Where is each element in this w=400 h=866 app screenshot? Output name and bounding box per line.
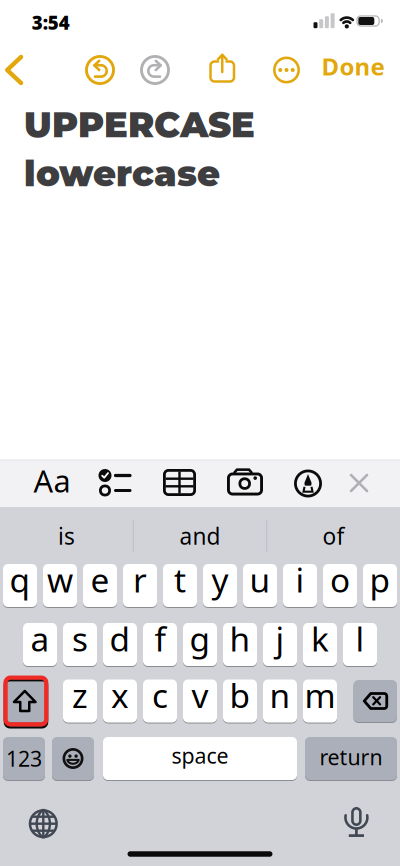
- staticText: e: [90, 557, 109, 602]
- button[interactable]: q: [3, 564, 37, 607]
- button[interactable]: n: [263, 679, 297, 722]
- staticText: r: [133, 557, 147, 602]
- button[interactable]: Share: [209, 52, 235, 82]
- staticText: l: [355, 616, 364, 661]
- button[interactable]: o: [323, 564, 357, 607]
- button[interactable]: i: [283, 564, 317, 607]
- button[interactable]: Emoji: [52, 737, 94, 780]
- button[interactable]: Format: [33, 463, 70, 503]
- button[interactable]: r: [123, 564, 157, 607]
- staticText: 3:54: [32, 10, 70, 35]
- staticText: x: [111, 673, 129, 717]
- button[interactable]: b: [223, 679, 257, 722]
- button[interactable]: Undo: [85, 55, 115, 85]
- button[interactable]: Dismiss keyboard: [349, 473, 368, 492]
- button[interactable]: Redo: [140, 55, 170, 85]
- button[interactable]: Next keyboard: [28, 809, 58, 839]
- button[interactable]: Checklist: [96, 467, 132, 497]
- button[interactable]: More: [273, 56, 300, 83]
- button[interactable]: z: [63, 679, 97, 722]
- staticText: UPPERCASE: [24, 103, 255, 146]
- staticText: n: [269, 673, 290, 717]
- button[interactable]: 123: [3, 737, 45, 780]
- staticText: Aa: [33, 460, 70, 501]
- button[interactable]: x: [103, 679, 137, 722]
- staticText: v: [191, 673, 208, 717]
- button[interactable]: j: [263, 623, 297, 666]
- button[interactable]: Shift: [3, 680, 46, 722]
- staticText: d: [109, 616, 130, 661]
- staticText: u: [249, 557, 270, 602]
- staticText: w: [47, 557, 73, 602]
- staticText: m: [304, 673, 335, 717]
- button[interactable]: Done: [321, 50, 384, 82]
- button[interactable]: v: [183, 679, 217, 722]
- staticText: t: [174, 557, 186, 602]
- button[interactable]: is: [6, 516, 126, 556]
- staticText: c: [152, 673, 168, 717]
- staticText: space: [171, 741, 228, 770]
- button[interactable]: p: [363, 564, 397, 607]
- staticText: p: [369, 557, 390, 602]
- staticText: z: [72, 673, 88, 717]
- button[interactable]: Camera: [226, 468, 264, 498]
- button[interactable]: Delete: [353, 680, 397, 722]
- staticText: 123: [6, 744, 42, 773]
- button[interactable]: y: [203, 564, 237, 607]
- button[interactable]: e: [83, 564, 117, 607]
- button[interactable]: h: [223, 623, 257, 666]
- staticText: g: [189, 616, 210, 661]
- staticText: b: [229, 673, 250, 717]
- staticText: i: [295, 557, 304, 602]
- staticText: return: [319, 743, 382, 771]
- button[interactable]: m: [303, 679, 337, 722]
- button[interactable]: d: [103, 623, 137, 666]
- staticText: o: [330, 557, 350, 602]
- staticText: of: [322, 521, 344, 551]
- staticText: h: [229, 616, 250, 661]
- button[interactable]: return: [305, 737, 397, 780]
- staticText: is: [58, 521, 75, 551]
- button[interactable]: Table: [163, 469, 196, 496]
- button[interactable]: w: [43, 564, 77, 607]
- staticText: Done: [321, 50, 384, 82]
- button[interactable]: f: [143, 623, 177, 666]
- button[interactable]: and: [140, 516, 260, 556]
- staticText: y: [211, 557, 228, 602]
- staticText: and: [179, 521, 220, 551]
- button[interactable]: of: [273, 516, 393, 556]
- button[interactable]: u: [243, 564, 277, 607]
- staticText: s: [72, 616, 88, 661]
- button[interactable]: k: [303, 623, 337, 666]
- button[interactable]: s: [63, 623, 97, 666]
- button[interactable]: a: [23, 623, 57, 666]
- button[interactable]: Markup: [294, 469, 322, 497]
- button[interactable]: c: [143, 679, 177, 722]
- button[interactable]: Dictate: [343, 803, 369, 839]
- staticText: q: [9, 557, 30, 602]
- button[interactable]: Back: [4, 54, 25, 85]
- button[interactable]: space: [103, 737, 297, 780]
- button[interactable]: l: [343, 623, 377, 666]
- staticText: a: [30, 616, 49, 661]
- staticText: k: [311, 616, 329, 661]
- staticText: lowercase: [24, 152, 220, 195]
- staticText: f: [154, 616, 165, 661]
- staticText: j: [275, 616, 284, 661]
- button[interactable]: t: [163, 564, 197, 607]
- button[interactable]: g: [183, 623, 217, 666]
